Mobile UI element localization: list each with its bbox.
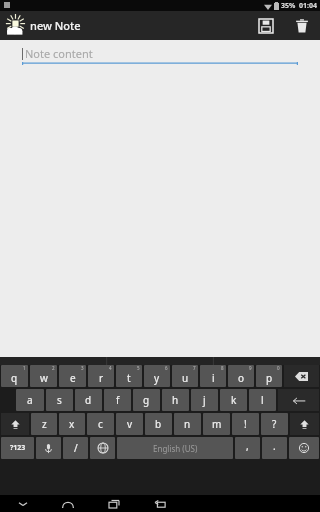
staticText: m (212, 417, 222, 431)
button[interactable]: Change language (90, 437, 115, 459)
button[interactable]: n (174, 413, 201, 435)
button[interactable]: App icon, navigate up (2, 13, 28, 39)
button[interactable]: c (87, 413, 114, 435)
button[interactable]: Shift (290, 413, 319, 435)
button[interactable]: l (249, 389, 276, 411)
staticText: x (69, 417, 75, 431)
staticText: f (116, 393, 120, 407)
button[interactable]: English (US) (117, 437, 233, 459)
staticText: j (203, 393, 206, 407)
button[interactable]: 0 (256, 365, 282, 387)
button[interactable]: 9 (228, 365, 254, 387)
staticText: k (231, 393, 237, 407)
button[interactable]: ?123 (1, 437, 34, 459)
staticText: l (261, 393, 264, 407)
staticText: q (11, 371, 18, 385)
button[interactable]: 8 (200, 365, 226, 387)
staticText: p (266, 371, 273, 385)
staticText: h (172, 393, 179, 407)
button[interactable]: Back (137, 495, 183, 512)
button[interactable]: h (162, 389, 189, 411)
staticText: 5 (137, 365, 140, 371)
staticText: new Note (30, 18, 81, 33)
button[interactable]: Save (248, 11, 284, 40)
staticText: 6 (165, 365, 168, 371)
staticText: w (40, 371, 48, 385)
button[interactable]: ! (232, 413, 259, 435)
button[interactable]: a (16, 389, 44, 411)
staticText: , (246, 439, 249, 453)
button[interactable]: g (133, 389, 160, 411)
staticText: b (155, 417, 162, 431)
button[interactable]: k (220, 389, 247, 411)
staticText: 01:04 (299, 1, 317, 11)
staticText: n (184, 417, 191, 431)
button[interactable]: 5 (116, 365, 142, 387)
button[interactable]: z (31, 413, 57, 435)
staticText: t (127, 371, 131, 385)
staticText: g (143, 393, 150, 407)
button[interactable]: Emoji (289, 437, 319, 459)
staticText: 1 (23, 365, 26, 371)
staticText: ! (244, 417, 247, 431)
staticText: English (US) (153, 443, 198, 454)
button[interactable]: Recent apps (91, 495, 137, 512)
button[interactable]: Delete (284, 11, 320, 40)
button[interactable]: 2 (30, 365, 57, 387)
staticText: 35% (281, 1, 296, 11)
staticText: 8 (221, 365, 224, 371)
button[interactable]: Shift (1, 413, 29, 435)
button[interactable]: 6 (144, 365, 170, 387)
button[interactable]: Voice input (36, 437, 61, 459)
staticText: y (154, 371, 160, 385)
button[interactable]: j (191, 389, 218, 411)
button[interactable]: / (63, 437, 88, 459)
button[interactable]: ? (261, 413, 288, 435)
staticText: ?123 (10, 443, 26, 453)
staticText: d (85, 393, 92, 407)
button[interactable]: Backspace (284, 365, 319, 387)
staticText: r (99, 371, 104, 385)
staticText: a (27, 393, 33, 407)
button[interactable]: d (75, 389, 102, 411)
button[interactable]: 3 (59, 365, 86, 387)
staticText: v (127, 417, 133, 431)
staticText: 2 (52, 365, 55, 371)
button[interactable]: x (59, 413, 85, 435)
staticText: Note content (25, 46, 93, 61)
staticText: s (57, 393, 62, 407)
staticText: 7 (193, 365, 196, 371)
staticText: u (182, 371, 189, 385)
button[interactable]: . (262, 437, 287, 459)
button[interactable]: b (145, 413, 172, 435)
staticText: e (70, 371, 76, 385)
staticText: 0 (277, 365, 280, 371)
button[interactable]: s (46, 389, 73, 411)
button[interactable]: , (235, 437, 260, 459)
button[interactable]: m (203, 413, 230, 435)
button[interactable]: Note content (22, 45, 298, 62)
button[interactable]: Enter (278, 389, 319, 411)
staticText: ? (272, 417, 277, 431)
staticText: c (98, 417, 103, 431)
button[interactable]: Hide keyboard (0, 495, 45, 512)
button[interactable]: v (116, 413, 143, 435)
staticText: 3 (81, 365, 84, 371)
staticText: i (212, 371, 215, 385)
button[interactable]: 1 (1, 365, 28, 387)
button[interactable]: Home (45, 495, 91, 512)
button[interactable]: 4 (88, 365, 114, 387)
staticText: 4 (109, 365, 112, 371)
staticText: z (42, 417, 47, 431)
staticText: . (273, 439, 276, 453)
staticText: o (238, 371, 245, 385)
staticText: / (74, 441, 78, 455)
staticText: 9 (249, 365, 252, 371)
button[interactable]: 7 (172, 365, 198, 387)
button[interactable]: f (104, 389, 131, 411)
